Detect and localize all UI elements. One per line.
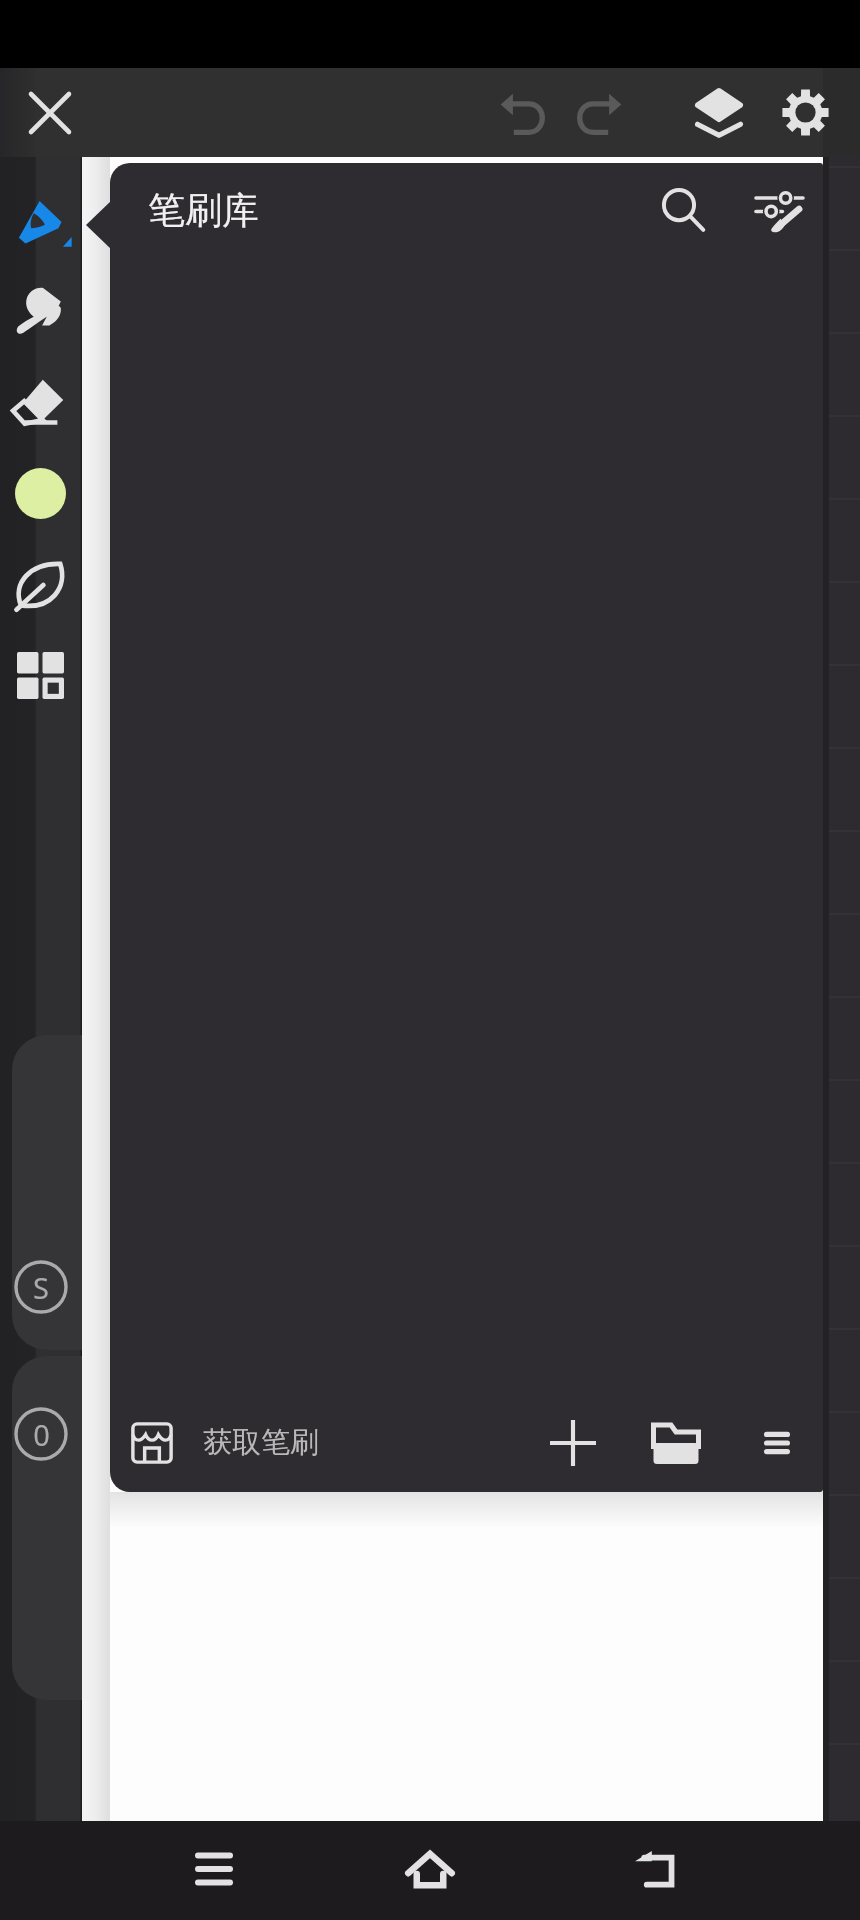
button[interactable]: Slider S [12,1035,82,1350]
staticText: 笔刷库 [148,187,259,234]
button[interactable]: Folder [634,1401,718,1485]
button[interactable]: Recent apps [166,1821,262,1917]
button[interactable]: Settings [769,76,841,148]
button[interactable]: Home [382,1821,478,1917]
button[interactable]: Back [608,1821,704,1917]
button[interactable]: Search [642,169,724,251]
button[interactable]: Layers [683,76,755,148]
button[interactable]: Brush [4,186,76,258]
staticText: 获取笔刷 [203,1424,319,1461]
button[interactable]: Color [4,457,76,529]
button[interactable]: Eraser [4,367,76,439]
button[interactable]: Add brush [531,1401,615,1485]
staticText: S [33,1268,49,1307]
button[interactable]: Smudge [4,277,76,349]
button[interactable]: 获取笔刷 [122,1403,319,1483]
button[interactable]: Undo [487,77,559,149]
staticText: 0 [33,1415,50,1454]
button[interactable]: Close [12,75,88,151]
button[interactable]: Grid [4,639,76,711]
button[interactable]: More options [735,1401,819,1485]
button[interactable]: Filter brushes [738,169,820,251]
button[interactable]: Leaf [4,548,76,620]
button[interactable]: Redo [563,77,635,149]
button[interactable]: Slider 0 [12,1356,82,1700]
